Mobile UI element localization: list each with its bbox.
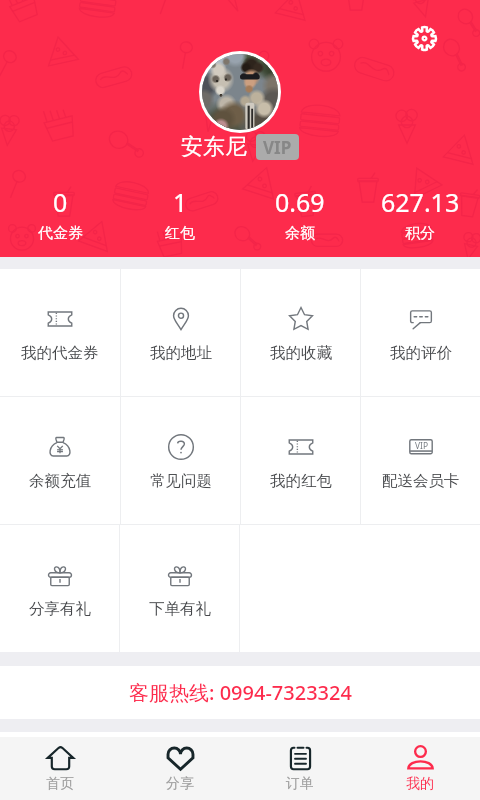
- staticText: 0: [53, 185, 68, 219]
- button[interactable]: 我的地址: [121, 269, 240, 396]
- button[interactable]: 0.69: [240, 185, 360, 243]
- staticText: 我的收藏: [270, 343, 332, 363]
- button[interactable]: 0: [0, 185, 120, 243]
- staticText: 627.13: [381, 185, 460, 219]
- button[interactable]: 下单有礼: [120, 525, 239, 652]
- staticText: 0.69: [275, 185, 325, 219]
- button[interactable]: 分享有礼: [0, 525, 119, 652]
- staticText: 我的代金券: [21, 343, 99, 363]
- staticText: 余额充值: [29, 471, 91, 491]
- staticText: 下单有礼: [149, 599, 211, 619]
- button[interactable]: Settings: [408, 22, 440, 54]
- button[interactable]: 我的评价: [361, 269, 480, 396]
- button[interactable]: 客服热线: 0994-7323324: [0, 666, 480, 719]
- staticText: 分享有礼: [29, 599, 91, 619]
- staticText: 我的红包: [270, 471, 332, 491]
- staticText: 配送会员卡: [382, 471, 460, 491]
- staticText: 我的地址: [150, 343, 212, 363]
- staticText: 客服热线: 0994-7323324: [129, 679, 352, 706]
- button[interactable]: 627.13: [360, 185, 480, 243]
- staticText: 积分: [405, 224, 435, 243]
- button[interactable]: 1: [120, 185, 240, 243]
- button[interactable]: 我的红包: [241, 397, 360, 524]
- staticText: 余额: [285, 224, 315, 243]
- button[interactable]: 首页: [0, 737, 120, 800]
- button[interactable]: 分享: [120, 737, 240, 800]
- staticText: 代金券: [38, 224, 83, 243]
- staticText: 首页: [46, 775, 74, 793]
- button[interactable]: 余额充值: [0, 397, 120, 524]
- staticText: 1: [173, 185, 188, 219]
- staticText: 红包: [165, 224, 195, 243]
- button[interactable]: 我的收藏: [241, 269, 360, 396]
- staticText: 我的: [406, 775, 434, 793]
- button[interactable]: 我的代金券: [0, 269, 120, 396]
- button[interactable]: VIP: [361, 397, 480, 524]
- staticText: VIP: [415, 440, 428, 451]
- staticText: 分享: [166, 775, 194, 793]
- button[interactable]: VIP: [256, 134, 299, 160]
- button[interactable]: 订单: [240, 737, 360, 800]
- staticText: 常见问题: [150, 471, 212, 491]
- staticText: 订单: [286, 775, 314, 793]
- staticText: VIP: [263, 136, 292, 159]
- staticText: 安东尼: [181, 133, 247, 161]
- staticText: 我的评价: [390, 343, 452, 363]
- button[interactable]: 我的: [360, 737, 480, 800]
- button[interactable]: 常见问题: [121, 397, 240, 524]
